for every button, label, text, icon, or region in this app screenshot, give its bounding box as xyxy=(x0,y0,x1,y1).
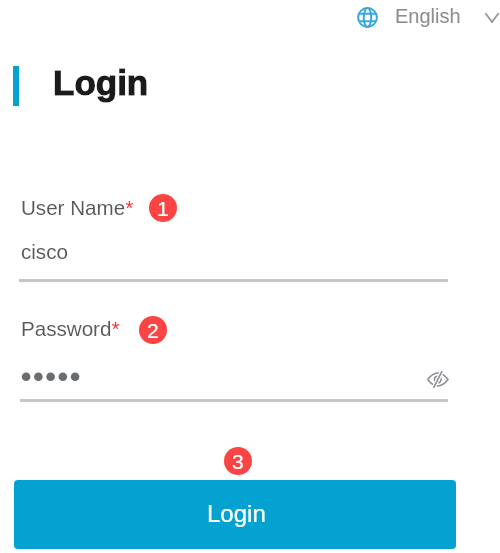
staticText: cisco xyxy=(21,240,68,263)
staticText: 1 xyxy=(157,197,169,220)
staticText: Password* xyxy=(21,317,120,340)
staticText: Login xyxy=(53,63,149,102)
staticText: Login xyxy=(207,500,266,527)
button[interactable]: Show password xyxy=(424,367,451,392)
staticText: User Name* xyxy=(21,196,134,219)
staticText: 2 xyxy=(147,319,159,342)
button[interactable]: cisco xyxy=(19,236,448,281)
staticText: 3 xyxy=(232,450,244,473)
button[interactable] xyxy=(20,358,420,402)
staticText: English xyxy=(395,5,461,27)
button[interactable]: Select language English xyxy=(350,0,500,36)
button[interactable]: Login xyxy=(14,480,456,549)
